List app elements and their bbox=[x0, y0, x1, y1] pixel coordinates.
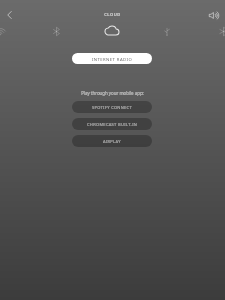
staticText: Play through your mobile app: bbox=[0, 90, 225, 96]
button[interactable]: CHROMECAST BUILT-IN bbox=[72, 118, 152, 130]
staticText: INTERNET RADIO bbox=[92, 57, 133, 63]
button[interactable]: SPOTIFY CONNECT bbox=[72, 101, 152, 113]
staticText: AIRPLAY bbox=[103, 139, 121, 144]
staticText: CHROMECAST BUILT-IN bbox=[87, 122, 138, 127]
button[interactable]: Source bbox=[0, 25, 11, 37]
staticText: SPOTIFY CONNECT bbox=[92, 105, 133, 110]
button[interactable]: Source bbox=[212, 25, 225, 37]
button[interactable]: INTERNET RADIO bbox=[72, 53, 152, 64]
button[interactable]: Source bbox=[101, 24, 123, 36]
button[interactable]: Source bbox=[156, 25, 178, 37]
button[interactable]: Source bbox=[45, 25, 67, 37]
button[interactable]: AIRPLAY bbox=[72, 135, 152, 147]
button[interactable]: Back bbox=[0, 6, 18, 24]
button[interactable]: Volume bbox=[204, 5, 224, 25]
staticText: CLOUD bbox=[0, 12, 225, 18]
